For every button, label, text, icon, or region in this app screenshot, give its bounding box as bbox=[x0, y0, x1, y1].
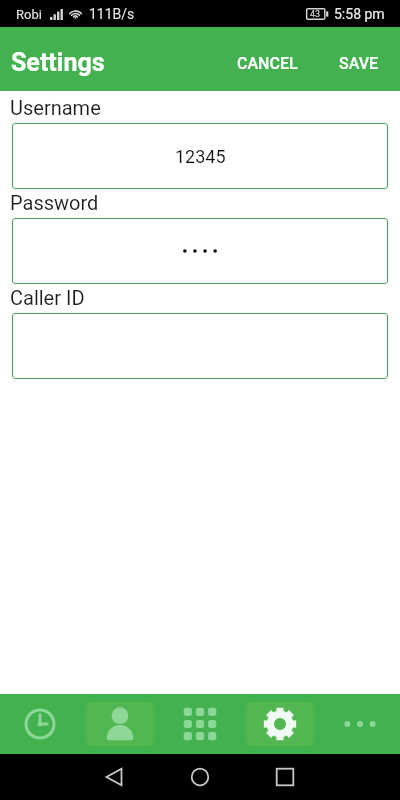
staticText: Robi bbox=[16, 7, 42, 22]
button[interactable] bbox=[12, 313, 388, 379]
staticText: Caller ID bbox=[10, 286, 85, 309]
staticText: 111B/s bbox=[89, 6, 135, 22]
button[interactable]: 12345 bbox=[12, 123, 388, 189]
staticText: Password bbox=[10, 191, 99, 214]
staticText: 12345 bbox=[175, 146, 226, 167]
staticText: Settings bbox=[11, 48, 105, 77]
button[interactable]: Dialpad bbox=[160, 694, 240, 754]
staticText: 43 bbox=[310, 9, 321, 20]
staticText: SAVE bbox=[339, 54, 379, 73]
button[interactable]: Recent calls bbox=[0, 694, 80, 754]
button[interactable]: Settings bbox=[240, 694, 320, 754]
button[interactable]: Home bbox=[177, 754, 223, 800]
button[interactable]: CANCEL bbox=[223, 40, 312, 87]
staticText: Username bbox=[10, 96, 101, 119]
button[interactable]: Recent apps bbox=[262, 754, 308, 800]
staticText: 5:58 pm bbox=[334, 6, 385, 22]
button[interactable]: SAVE bbox=[325, 40, 400, 87]
button[interactable] bbox=[12, 218, 388, 284]
button[interactable]: More options bbox=[320, 694, 400, 754]
button[interactable]: Back bbox=[91, 754, 137, 800]
button[interactable]: Contacts bbox=[80, 694, 160, 754]
staticText: CANCEL bbox=[237, 54, 298, 73]
